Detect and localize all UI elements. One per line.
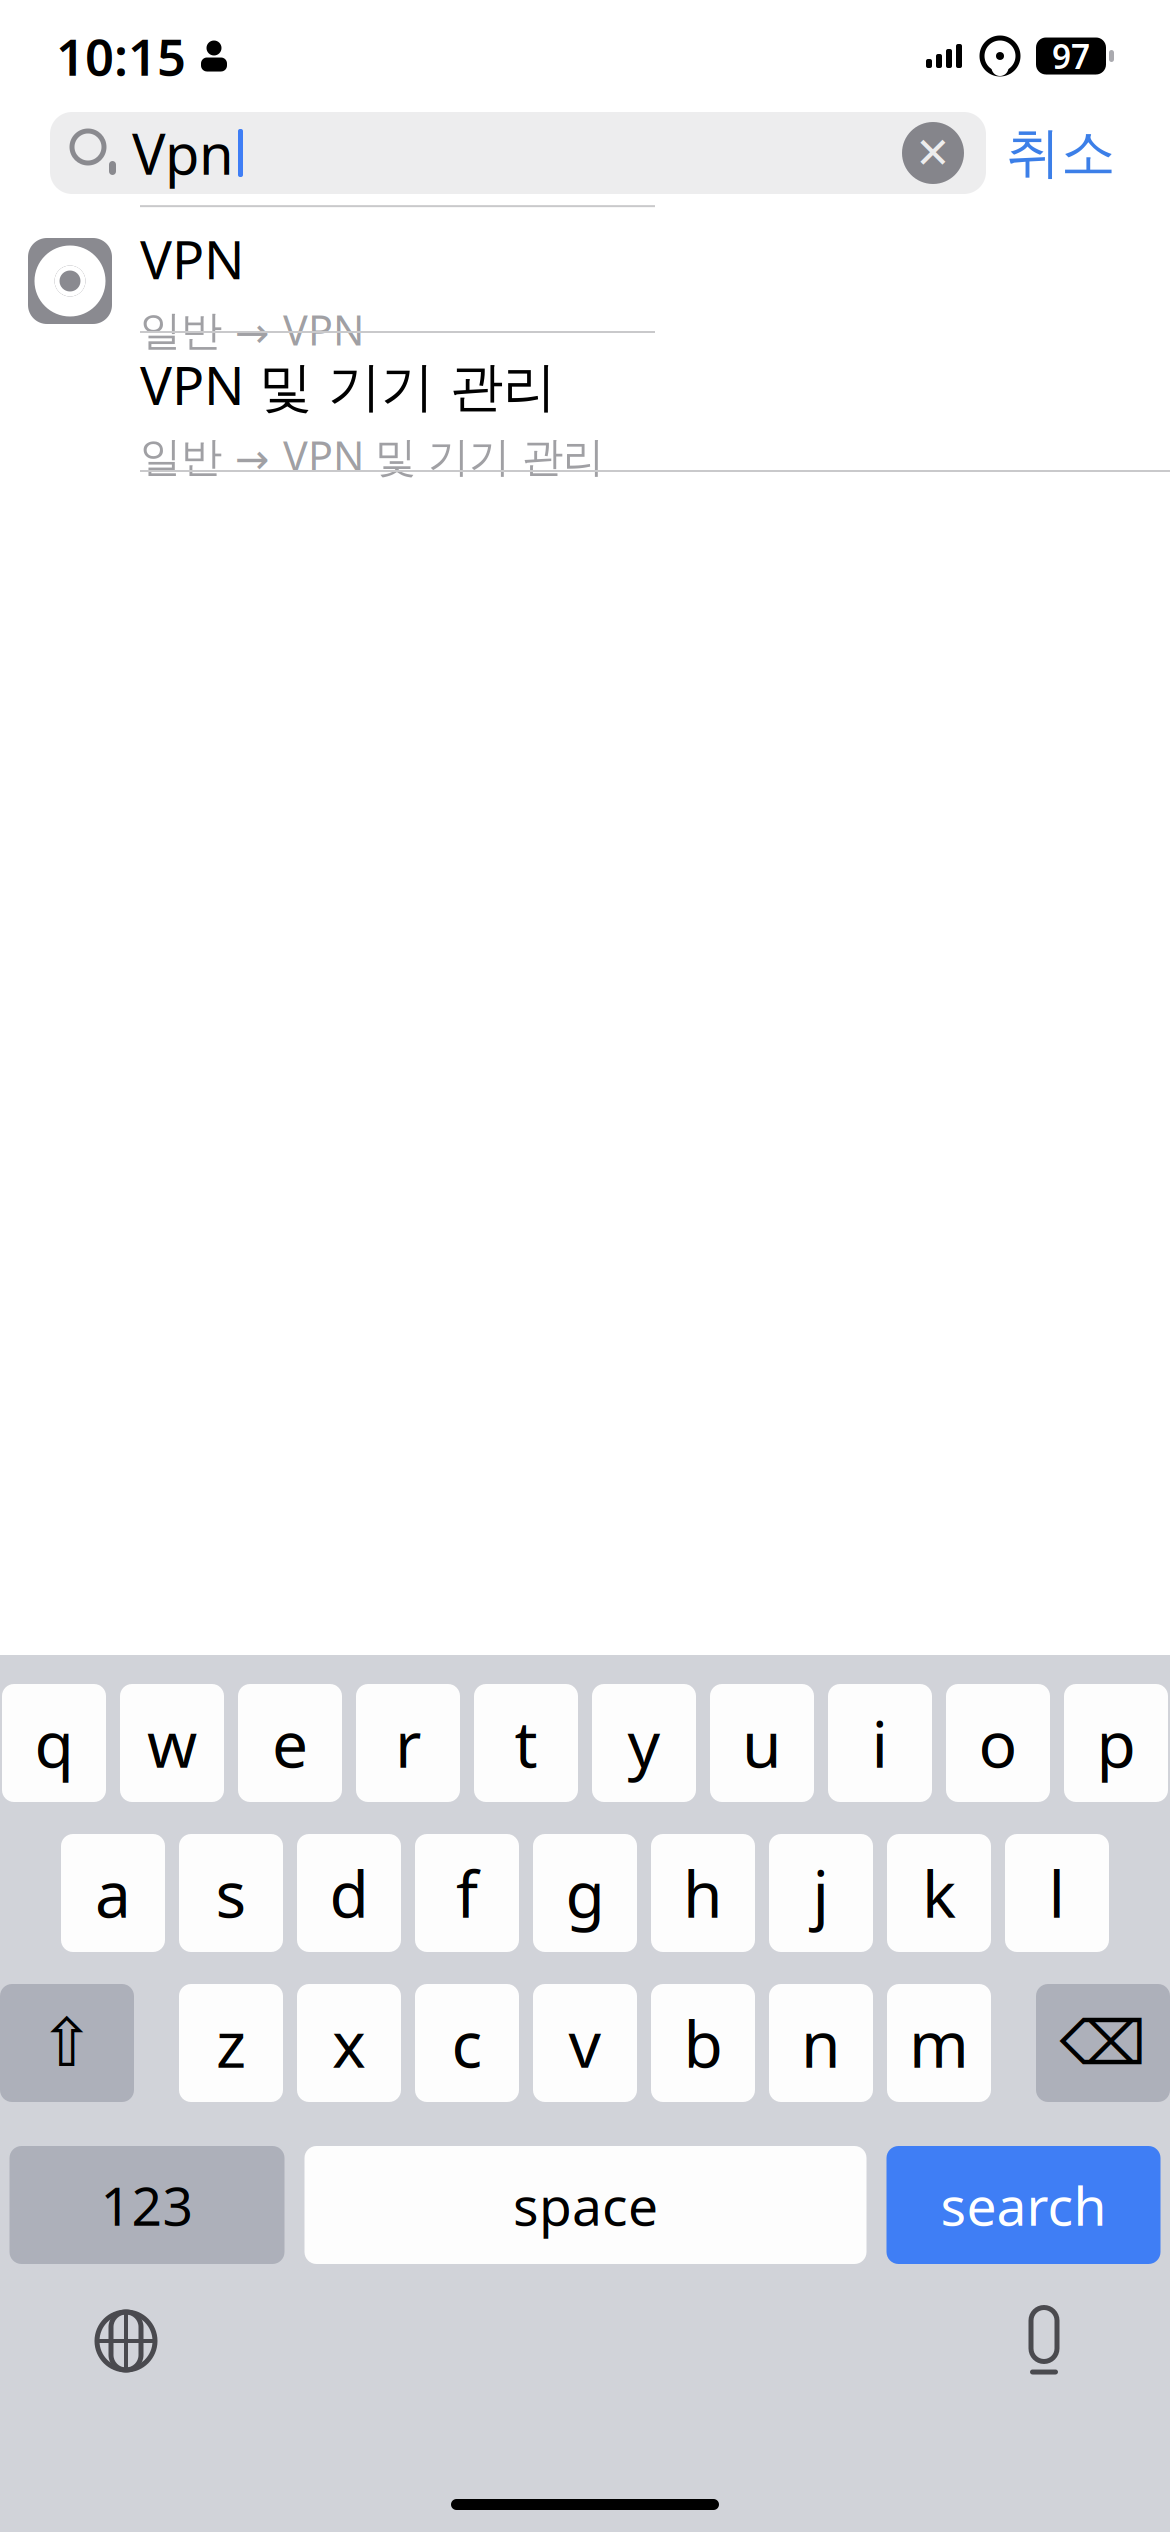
staticText: m: [909, 2000, 969, 2085]
button[interactable]: Dictation: [984, 2286, 1104, 2396]
staticText: s: [215, 1850, 246, 1935]
staticText: l: [1048, 1850, 1065, 1935]
button[interactable]: Delete: [1036, 1984, 1170, 2102]
button[interactable]: 123: [9, 2146, 284, 2264]
staticText: VPN: [140, 223, 245, 294]
button[interactable]: r: [356, 1684, 460, 1802]
staticText: b: [683, 2000, 722, 2085]
button[interactable]: l: [1005, 1834, 1109, 1952]
staticText: n: [801, 2000, 841, 2085]
button[interactable]: space: [304, 2146, 866, 2264]
button[interactable]: c: [415, 1984, 519, 2102]
button[interactable]: Shift: [0, 1984, 134, 2102]
staticText: y: [627, 1700, 660, 1785]
button[interactable]: p: [1064, 1684, 1168, 1802]
button[interactable]: m: [887, 1984, 991, 2102]
staticText: o: [978, 1700, 1017, 1785]
staticText: ⌫: [1059, 2008, 1146, 2078]
staticText: search: [940, 2170, 1106, 2240]
button[interactable]: i: [828, 1684, 932, 1802]
staticText: 10:15: [56, 22, 186, 90]
button[interactable]: v: [533, 1984, 637, 2102]
button[interactable]: e: [238, 1684, 342, 1802]
button[interactable]: s: [179, 1834, 283, 1952]
button[interactable]: a: [61, 1834, 165, 1952]
staticText: h: [683, 1850, 723, 1935]
staticText: c: [451, 2000, 482, 2085]
staticText: Vpn: [132, 116, 234, 190]
button[interactable]: z: [179, 1984, 283, 2102]
staticText: w: [147, 1700, 197, 1785]
staticText: ✕: [915, 129, 951, 177]
button[interactable]: Clear text: [902, 112, 986, 194]
button[interactable]: b: [651, 1984, 755, 2102]
staticText: j: [812, 1850, 829, 1935]
button[interactable]: w: [120, 1684, 224, 1802]
button[interactable]: search: [886, 2146, 1160, 2264]
button[interactable]: u: [710, 1684, 814, 1802]
staticText: f: [456, 1850, 478, 1935]
staticText: 취소: [1006, 119, 1116, 186]
staticText: space: [513, 2170, 658, 2240]
staticText: v: [568, 2000, 601, 2085]
staticText: q: [34, 1700, 73, 1785]
button[interactable]: y: [592, 1684, 696, 1802]
button[interactable]: k: [887, 1834, 991, 1952]
staticText: VPN 및 기기 관리: [140, 349, 556, 420]
staticText: g: [565, 1850, 604, 1935]
button[interactable]: VPN: [0, 218, 1170, 344]
button[interactable]: o: [946, 1684, 1050, 1802]
staticText: a: [95, 1850, 131, 1935]
button[interactable]: f: [415, 1834, 519, 1952]
staticText: k: [922, 1850, 956, 1935]
staticText: e: [272, 1700, 308, 1785]
staticText: z: [216, 2000, 246, 2085]
button[interactable]: Next keyboard: [66, 2286, 186, 2396]
button[interactable]: j: [769, 1834, 873, 1952]
button[interactable]: d: [297, 1834, 401, 1952]
button[interactable]: x: [297, 1984, 401, 2102]
staticText: 123: [100, 2170, 193, 2240]
button[interactable]: VPN 및 기기 관리: [0, 344, 1170, 470]
button[interactable]: h: [651, 1834, 755, 1952]
staticText: p: [1096, 1700, 1135, 1785]
button[interactable]: q: [2, 1684, 106, 1802]
staticText: 일반 → VPN: [140, 302, 364, 357]
button[interactable]: g: [533, 1834, 637, 1952]
staticText: u: [742, 1700, 782, 1785]
button[interactable]: n: [769, 1984, 873, 2102]
staticText: x: [332, 2000, 366, 2085]
staticText: 일반 → VPN 및 기기 관리: [140, 428, 604, 483]
button[interactable]: 취소: [986, 112, 1136, 194]
staticText: d: [329, 1850, 368, 1935]
staticText: r: [395, 1700, 421, 1785]
staticText: t: [514, 1700, 537, 1785]
staticText: ⇧: [39, 2005, 95, 2081]
staticText: i: [871, 1700, 888, 1785]
staticText: 97: [1052, 34, 1090, 78]
button[interactable]: t: [474, 1684, 578, 1802]
